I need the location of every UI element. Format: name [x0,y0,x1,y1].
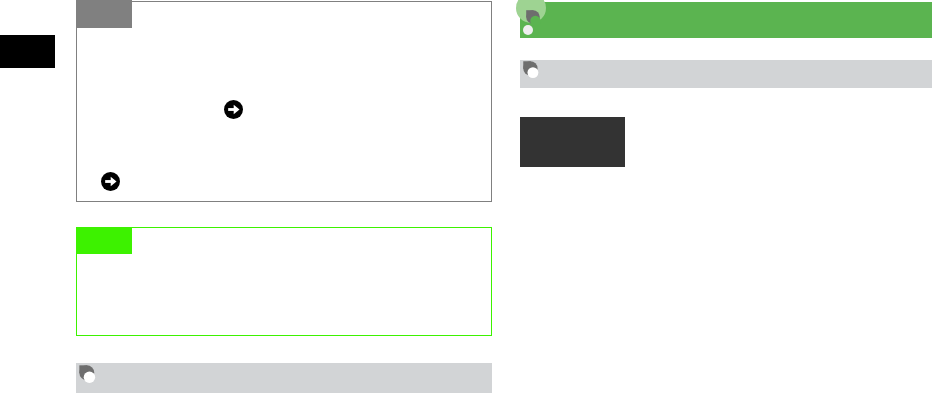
button[interactable] [76,227,492,336]
button[interactable]: Avatar [78,364,100,386]
button[interactable]: Avatar [522,60,543,81]
button[interactable]: Go [76,1,492,202]
button[interactable]: Avatar [525,9,545,29]
button[interactable]: Avatar [520,2,932,38]
button[interactable]: Avatar [76,363,492,393]
button[interactable]: Go [101,172,120,191]
button[interactable]: Avatar [520,60,932,88]
button[interactable]: Go [224,100,243,119]
